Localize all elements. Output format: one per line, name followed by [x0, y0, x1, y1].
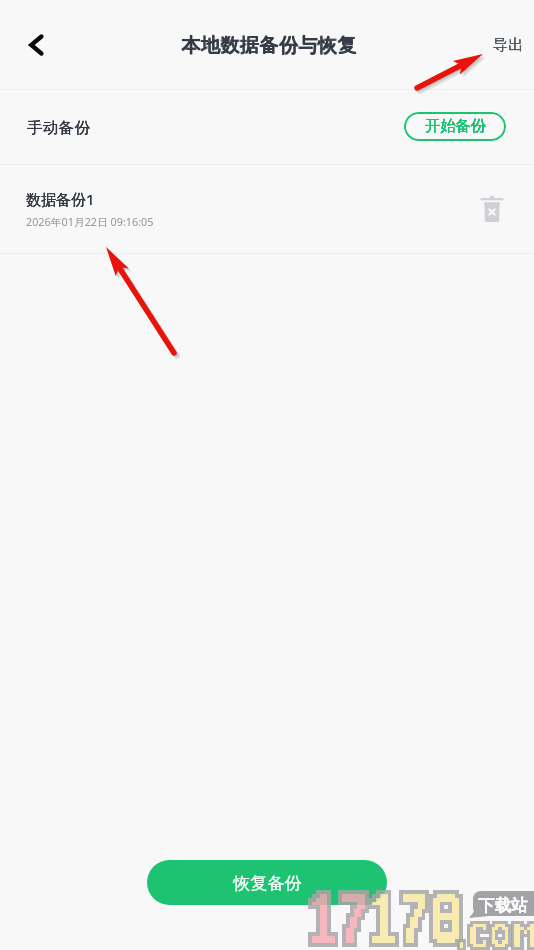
- staticText: 2026年01月22日 09:16:05: [26, 214, 154, 229]
- staticText: 开始备份: [425, 116, 486, 135]
- button[interactable]: 开始备份: [404, 112, 506, 141]
- staticText: 下载站: [478, 895, 528, 916]
- staticText: 数据备份1: [26, 189, 95, 209]
- staticText: 手动备份: [27, 118, 91, 138]
- staticText: 本地数据备份与恢复: [182, 32, 358, 57]
- staticText: 数据备份1: [26, 189, 95, 209]
- staticText: 数据备份1: [26, 189, 95, 209]
- staticText: 手动备份: [27, 118, 91, 138]
- staticText: 导出: [493, 35, 524, 54]
- staticText: 本地数据备份与恢复: [181, 32, 357, 57]
- staticText: 开始备份: [425, 116, 486, 135]
- staticText: 本地数据备份与恢复: [182, 33, 358, 58]
- staticText: 导出: [493, 35, 524, 54]
- staticText: 导出: [493, 35, 524, 54]
- staticText: 数据备份1: [26, 189, 95, 209]
- staticText: 手动备份: [27, 118, 91, 138]
- button[interactable]: Delete backup: [470, 187, 514, 231]
- staticText: 恢复备份: [233, 872, 302, 894]
- button[interactable]: 恢复备份: [147, 860, 387, 905]
- staticText: 开始备份: [425, 116, 486, 135]
- button[interactable]: Back: [0, 10, 62, 80]
- staticText: 导出: [493, 35, 524, 54]
- staticText: 手动备份: [27, 118, 91, 138]
- button[interactable]: 导出: [480, 23, 534, 66]
- button[interactable]: 数据备份1: [0, 165, 534, 253]
- staticText: 本地数据备份与恢复: [181, 33, 357, 58]
- staticText: 开始备份: [425, 116, 486, 135]
